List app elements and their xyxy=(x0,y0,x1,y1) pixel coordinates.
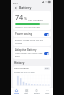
button[interactable]: Adaptive Battery xyxy=(13,47,51,59)
staticText: 9:41 xyxy=(13,1,18,4)
staticText: Apps xyxy=(24,92,28,94)
staticText: Adaptive Battery xyxy=(15,48,37,52)
button[interactable]: More xyxy=(42,88,53,95)
staticText: Screen on 3 hr 12 min xyxy=(14,71,35,74)
staticText: Last 24 hours xyxy=(14,67,29,70)
staticText: % xyxy=(24,16,27,21)
staticText: Day xyxy=(45,67,49,70)
staticText: Limit battery for rarely used apps xyxy=(15,52,43,58)
staticText: About 14 hr 20 min left xyxy=(15,26,40,29)
button[interactable]: Day xyxy=(44,67,50,70)
staticText: Power saving xyxy=(15,32,33,36)
staticText: Battery usage since last full charge xyxy=(15,39,49,45)
button[interactable]: Power saving xyxy=(13,31,51,37)
button[interactable]: Home xyxy=(11,88,21,95)
staticText: History xyxy=(14,61,25,65)
staticText: Battery xyxy=(34,92,40,94)
button[interactable]: Toggle xyxy=(44,52,49,55)
button[interactable]: Back xyxy=(13,5,18,10)
button[interactable]: Last 24 hours xyxy=(13,66,51,88)
staticText: Not charging xyxy=(28,18,43,21)
button[interactable]: Toggle xyxy=(44,33,49,36)
button[interactable]: Battery xyxy=(31,88,42,95)
button[interactable]: Apps xyxy=(21,88,31,95)
staticText: 74 xyxy=(15,12,24,22)
button[interactable]: 74 xyxy=(13,11,51,30)
button[interactable]: Battery usage since last full charge xyxy=(13,38,51,46)
staticText: Battery xyxy=(19,5,32,10)
staticText: More xyxy=(45,92,50,94)
staticText: Home xyxy=(14,92,19,94)
